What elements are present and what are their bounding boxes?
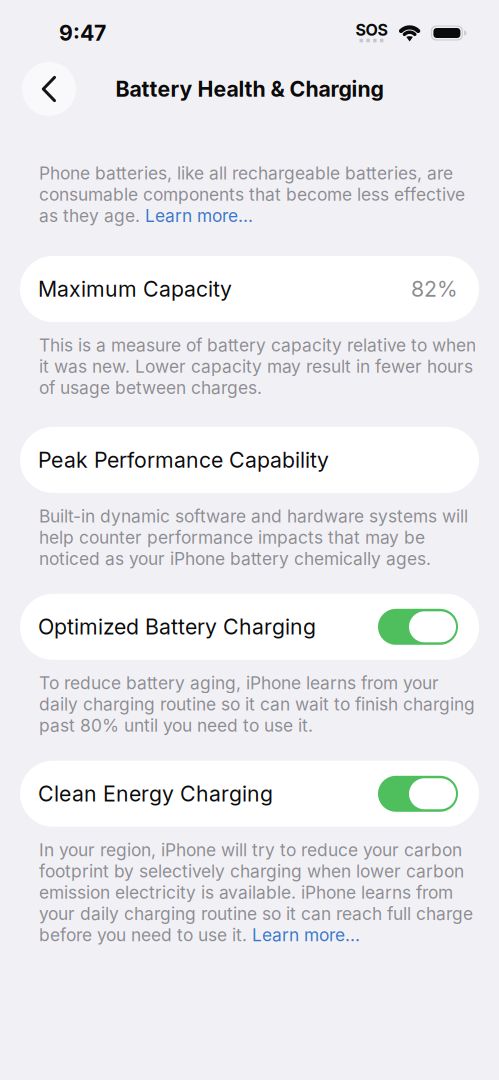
button[interactable]: Maximum Capacity	[20, 256, 479, 322]
staticText: Built-in dynamic software and hardware s…	[39, 506, 468, 569]
staticText: Battery Health & Charging	[115, 76, 383, 102]
staticText: This is a measure of battery capacity re…	[39, 335, 476, 398]
button[interactable]: Peak Performance Capability	[20, 427, 479, 493]
button[interactable]: Clean Energy Charging	[20, 761, 479, 827]
staticText: Clean Energy Charging	[38, 781, 273, 807]
staticText: 9:47	[59, 20, 106, 46]
staticText: In your region, iPhone will try to reduc…	[39, 840, 473, 945]
button[interactable]: Optimized Battery Charging	[20, 594, 479, 660]
staticText: Phone batteries, like all rechargeable b…	[39, 163, 465, 226]
staticText: To reduce battery aging, iPhone learns f…	[39, 673, 475, 736]
staticText: SOS	[355, 20, 387, 40]
staticText: 82%	[411, 276, 458, 302]
staticText: Peak Performance Capability	[38, 447, 329, 473]
staticText: Optimized Battery Charging	[38, 614, 316, 640]
button[interactable]: Back	[22, 62, 76, 116]
staticText: Maximum Capacity	[38, 276, 232, 302]
